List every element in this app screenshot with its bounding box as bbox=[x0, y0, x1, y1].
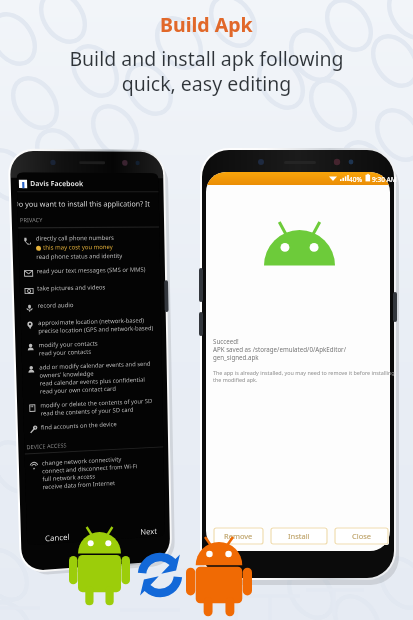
button[interactable]: Install bbox=[270, 527, 328, 545]
staticText: Build and install apk following quick, e… bbox=[69, 45, 344, 96]
staticText: add or modify calendar events and send e… bbox=[39, 359, 162, 371]
staticText: Build Apk bbox=[160, 11, 253, 38]
staticText: Davis Facebook bbox=[30, 179, 84, 188]
staticText: Remove bbox=[224, 531, 253, 541]
staticText: take pictures and videos bbox=[37, 283, 106, 293]
staticText: Next bbox=[140, 525, 157, 537]
staticText: record audio bbox=[37, 301, 74, 310]
staticText: directly call phone numbers bbox=[36, 234, 115, 243]
staticText: 9:30 AM bbox=[372, 175, 397, 184]
button[interactable]: Cancel bbox=[27, 529, 87, 546]
staticText: DEVICE ACCESS bbox=[26, 441, 67, 451]
button[interactable]: Next bbox=[132, 524, 165, 538]
staticText: full network access bbox=[42, 472, 96, 483]
staticText: precise location (GPS and network-based) bbox=[38, 324, 154, 335]
staticText: Do you want to install this application?… bbox=[17, 198, 155, 209]
staticText: receive data from Internet bbox=[42, 479, 115, 491]
staticText: owners' knowledge bbox=[39, 370, 94, 379]
staticText: find accounts on the device bbox=[41, 420, 117, 432]
staticText: read calendar events plus confidential i… bbox=[40, 375, 162, 388]
staticText: Install bbox=[288, 531, 310, 541]
staticText: change network connectivity bbox=[42, 455, 121, 467]
button[interactable]: Remove bbox=[213, 527, 264, 545]
staticText: read phone status and identity bbox=[36, 252, 123, 261]
staticText: 40% bbox=[349, 175, 362, 184]
staticText: gen_signed.apk bbox=[213, 353, 259, 361]
staticText: read your text messages (SMS or MMS) bbox=[36, 266, 146, 275]
staticText: this may cost you money bbox=[43, 243, 113, 252]
staticText: Cancel bbox=[45, 531, 70, 543]
staticText: read your contacts bbox=[39, 348, 92, 357]
staticText: The app is already installed, you may ne… bbox=[213, 369, 395, 384]
staticText: modify or delete the contents of your SD… bbox=[40, 397, 163, 410]
staticText: Succeed! bbox=[213, 337, 239, 345]
staticText: read your own contact card bbox=[40, 385, 116, 396]
staticText: connect and disconnect from Wi-Fi bbox=[42, 462, 138, 475]
staticText: APK saved as /storage/emulated/0/ApkEdit… bbox=[213, 345, 346, 353]
staticText: Close bbox=[352, 531, 372, 541]
staticText: read the contents of your SD card bbox=[40, 406, 134, 418]
staticText: approximate location (network-based) bbox=[38, 316, 145, 327]
button[interactable]: Close bbox=[334, 527, 389, 545]
staticText: modify your contacts bbox=[39, 340, 98, 349]
staticText: PRIVACY bbox=[20, 216, 43, 224]
